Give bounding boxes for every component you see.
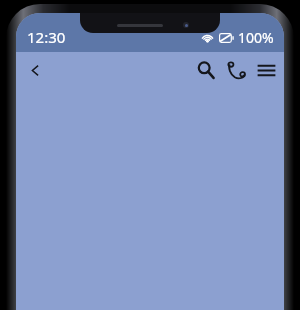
staticText: 12:30 xyxy=(27,27,66,47)
button[interactable]: Search xyxy=(192,56,220,84)
button[interactable]: Menu xyxy=(252,56,280,84)
staticText: 100% xyxy=(238,28,274,47)
button[interactable]: Back xyxy=(20,55,50,85)
button[interactable]: Call xyxy=(222,56,250,84)
